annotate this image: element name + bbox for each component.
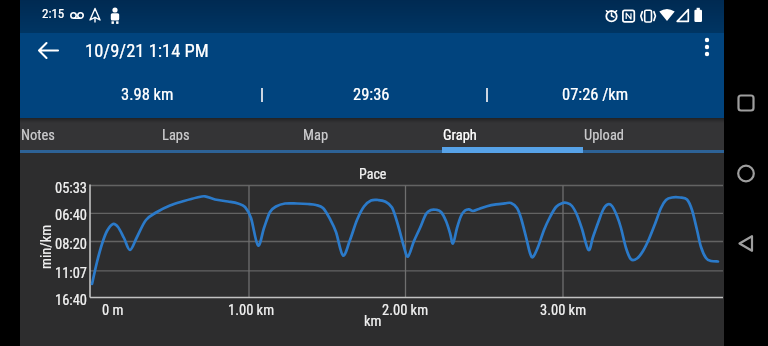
button[interactable]: Graph (442, 118, 583, 153)
staticText: 29:36 (353, 85, 390, 104)
button[interactable]: Notes (20, 118, 161, 153)
button[interactable] (728, 225, 764, 261)
staticText: Map (303, 127, 329, 144)
staticText: min/km (38, 224, 55, 269)
staticText: 3.00 km (540, 302, 587, 319)
staticText: 10/9/21 1:14 PM (85, 40, 209, 62)
button[interactable] (728, 85, 764, 121)
staticText: 08:20 (55, 236, 88, 253)
button[interactable]: Map (302, 118, 443, 153)
staticText: 1.00 km (228, 302, 275, 319)
staticText: Notes (21, 127, 55, 144)
staticText: 3.98 km (121, 85, 174, 104)
button[interactable]: Laps (161, 118, 302, 153)
staticText: 07:26 /km (562, 85, 629, 104)
button[interactable] (728, 155, 764, 191)
staticText: 16:40 (55, 292, 88, 309)
staticText: 2:15 (42, 6, 65, 21)
staticText: Pace (359, 166, 387, 182)
staticText: 2.00 km (382, 302, 429, 319)
button[interactable] (30, 32, 66, 68)
staticText: Graph (443, 127, 477, 144)
staticText: Upload (584, 127, 625, 144)
staticText: 05:33 (55, 180, 88, 197)
staticText: 0 m (102, 302, 124, 319)
staticText: 11:07 (55, 265, 88, 282)
button[interactable]: Upload (583, 118, 724, 153)
staticText: km (364, 313, 382, 330)
staticText: 06:40 (55, 207, 88, 224)
button[interactable] (692, 29, 722, 65)
staticText: Laps (162, 127, 190, 144)
